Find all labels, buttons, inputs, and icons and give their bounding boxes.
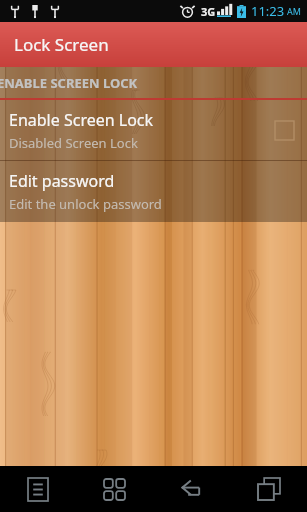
staticText: 11:23 [251, 2, 285, 20]
staticText: Disabled Screen Lock [9, 134, 138, 152]
staticText: Edit the unlock password [9, 195, 162, 213]
button[interactable]: Menu [0, 466, 76, 512]
button[interactable]: Back [153, 466, 230, 512]
button[interactable]: Recent apps [230, 466, 307, 512]
button[interactable]: Enable Screen Lock [0, 100, 307, 160]
staticText: 3G [201, 4, 216, 19]
staticText: Edit password [9, 170, 115, 192]
staticText: Enable Screen Lock [9, 109, 154, 131]
button[interactable]: Home [76, 466, 153, 512]
button[interactable]: Edit password [0, 161, 307, 221]
staticText: AM [287, 5, 301, 17]
staticText: Lock Screen [14, 33, 109, 56]
staticText: ENABLE SCREEN LOCK [0, 74, 138, 92]
